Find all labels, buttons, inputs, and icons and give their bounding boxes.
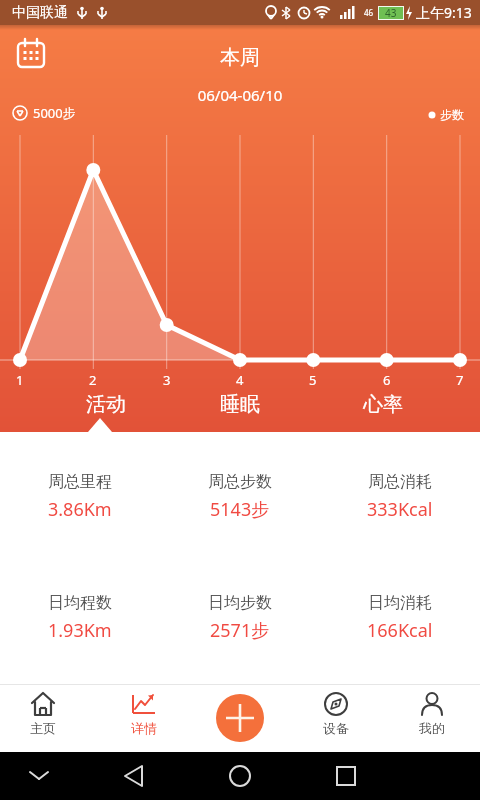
staticText: 2571步 [210,618,270,643]
button[interactable]: 心率 [343,388,423,420]
button[interactable]: 设备 [288,684,384,736]
staticText: 日均步数 [208,593,272,613]
staticText: 主页 [30,720,56,736]
staticText: 5 [309,371,317,389]
staticText: 我的 [419,720,445,736]
button[interactable] [120,752,240,800]
staticText: 日均消耗 [368,593,432,613]
staticText: 本周 [0,45,480,70]
staticText: 日均程数 [48,593,112,613]
staticText: 周总里程 [48,472,112,492]
staticText: 1 [16,371,24,389]
button[interactable]: 主页 [0,684,91,736]
button[interactable]: 详情 [96,684,192,736]
staticText: 5000步 [33,104,76,122]
staticText: 7 [456,371,464,389]
staticText: 43 [385,6,397,20]
button[interactable] [14,36,50,72]
staticText: 周总消耗 [368,472,432,492]
staticText: 5143步 [210,497,270,522]
button[interactable] [216,694,264,742]
staticText: 心率 [363,392,403,417]
button[interactable]: 我的 [384,684,480,736]
staticText: 06/04-06/10 [0,85,480,105]
staticText: 上午9:13 [416,3,472,22]
staticText: 活动 [86,392,126,417]
staticText: 步数 [440,107,464,122]
button[interactable] [0,752,120,800]
staticText: 1.93Km [48,618,112,643]
staticText: 2 [89,371,97,389]
staticText: 166Kcal [367,618,433,643]
staticText: 3.86Km [48,497,112,522]
staticText: 设备 [323,720,349,736]
button[interactable]: 活动 [66,388,146,420]
staticText: 详情 [131,720,157,736]
staticText: 6 [383,371,391,389]
staticText: 周总步数 [208,472,272,492]
staticText: 333Kcal [367,497,433,522]
staticText: 46 [364,7,374,18]
staticText: 4 [236,371,244,389]
staticText: 睡眠 [220,392,260,417]
staticText: 中国联通 [12,4,68,22]
staticText: 3 [163,371,171,389]
button[interactable] [240,752,360,800]
button[interactable]: 睡眠 [200,388,280,420]
